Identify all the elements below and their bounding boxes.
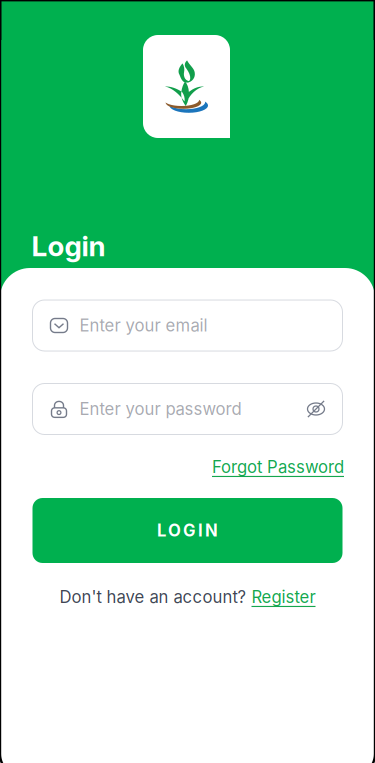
staticText: Enter your email	[79, 315, 207, 336]
staticText: LOGIN	[157, 520, 218, 541]
button[interactable]: Forgot Password	[174, 454, 344, 480]
button[interactable]: Register	[251, 587, 315, 607]
button[interactable]: LOGIN	[32, 498, 342, 563]
staticText: Register	[251, 587, 315, 607]
staticText: Forgot Password	[212, 457, 344, 477]
staticText: Enter your password	[79, 399, 241, 419]
staticText: Don't have an account?	[59, 587, 246, 607]
staticText: Login	[31, 229, 105, 263]
